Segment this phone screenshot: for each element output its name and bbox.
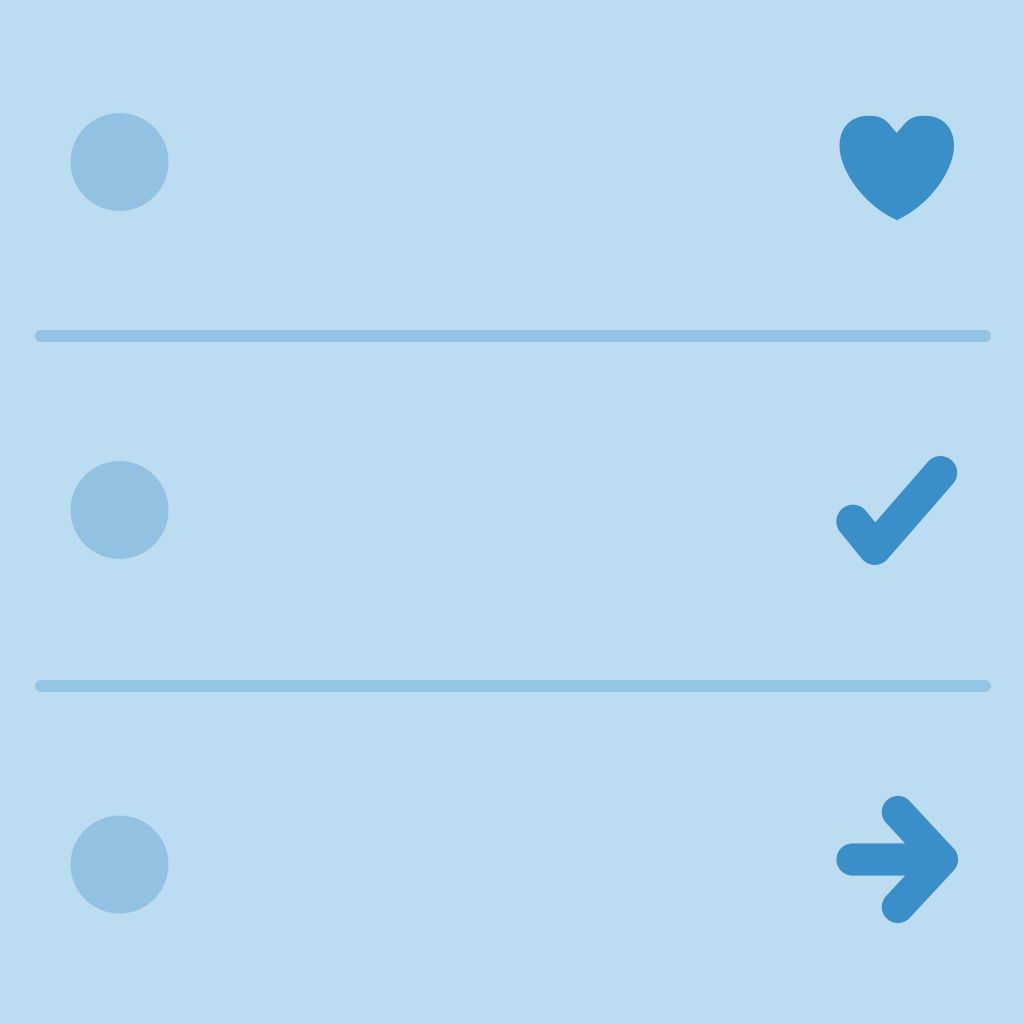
- button[interactable]: Continue: [0, 692, 1024, 1024]
- button[interactable]: Done: [0, 342, 1024, 680]
- button[interactable]: Favorite: [0, 0, 1024, 330]
